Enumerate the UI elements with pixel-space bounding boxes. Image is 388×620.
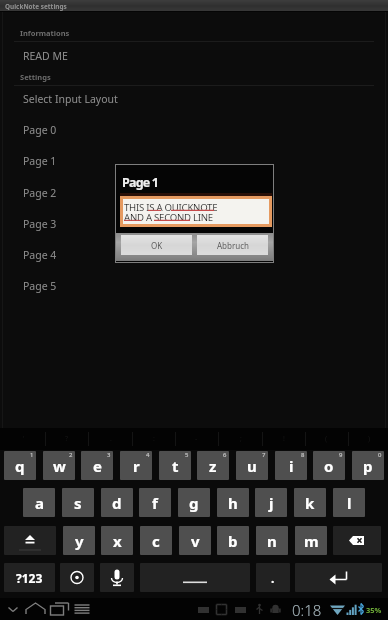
button[interactable]: Recent apps — [49, 598, 70, 620]
staticText: w — [53, 456, 66, 476]
staticText: Settings — [20, 72, 51, 82]
button[interactable]: v — [179, 526, 211, 555]
button[interactable]: r — [120, 451, 152, 480]
button[interactable]: Enter — [295, 563, 382, 592]
staticText: m — [304, 531, 319, 551]
button[interactable]: Voice input — [100, 563, 134, 592]
staticText: s — [74, 493, 82, 513]
button[interactable]: ?123 — [4, 563, 55, 592]
button[interactable]: Page 0 — [0, 122, 388, 153]
button[interactable]: Menu — [72, 598, 92, 620]
staticText: u — [247, 456, 257, 476]
button[interactable]: u — [236, 451, 268, 480]
button[interactable]: Page 5 — [0, 278, 388, 309]
button[interactable]: c — [140, 526, 172, 555]
staticText: p — [363, 456, 373, 476]
button[interactable]: Space — [140, 563, 250, 592]
button[interactable]: Backspace — [333, 526, 381, 555]
staticText: n — [267, 531, 277, 551]
button[interactable]: a — [23, 488, 55, 517]
button[interactable]: Shift — [4, 526, 56, 555]
staticText: Page 3 — [23, 217, 57, 231]
button[interactable]: Home — [24, 598, 47, 620]
staticText: QuickNote settings — [5, 2, 67, 11]
button[interactable]: n — [256, 526, 288, 555]
staticText: d — [112, 493, 122, 513]
staticText: 1 — [30, 451, 34, 459]
staticText: z — [209, 456, 217, 476]
button[interactable]: Page 2 — [0, 185, 388, 216]
button[interactable]: e — [81, 451, 113, 480]
staticText: 0:18 — [292, 600, 322, 620]
button[interactable]: z — [197, 451, 229, 480]
staticText: b — [228, 531, 238, 551]
staticText: x — [113, 531, 122, 551]
button[interactable]: Change language — [60, 563, 94, 592]
staticText: t — [172, 456, 179, 476]
staticText: j — [269, 493, 274, 513]
button[interactable]: Abbruch — [197, 235, 268, 255]
staticText: Abbruch — [217, 240, 249, 251]
staticText: OK — [151, 240, 163, 251]
staticText: 6 — [223, 451, 227, 459]
staticText: Page 4 — [23, 248, 57, 262]
button[interactable]: w — [43, 451, 75, 480]
button[interactable]: k — [294, 488, 326, 517]
staticText: 4 — [146, 451, 150, 459]
staticText: Informations — [20, 28, 70, 38]
button[interactable]: o — [313, 451, 345, 480]
button[interactable]: g — [178, 488, 210, 517]
button[interactable]: Page 4 — [0, 247, 388, 278]
staticText: Page 5 — [23, 279, 57, 293]
button[interactable]: t — [159, 451, 191, 480]
staticText: Page 0 — [23, 123, 57, 137]
button[interactable]: i — [275, 451, 307, 480]
staticText: 9 — [339, 451, 343, 459]
button[interactable]: y — [63, 526, 95, 555]
button[interactable]: . — [256, 563, 290, 592]
button[interactable]: p — [352, 451, 384, 480]
staticText: ?123 — [16, 570, 43, 586]
button[interactable]: d — [101, 488, 133, 517]
button[interactable]: Page 1 — [0, 153, 388, 184]
button[interactable]: OK — [121, 235, 192, 255]
button[interactable]: m — [295, 526, 327, 555]
staticText: 7 — [262, 451, 266, 459]
staticText: 35% — [366, 605, 382, 615]
button[interactable]: h — [217, 488, 249, 517]
staticText: READ ME — [23, 49, 68, 63]
button[interactable]: Select Input Layout — [0, 91, 388, 122]
button[interactable]: Back — [2, 598, 24, 620]
staticText: e — [93, 456, 102, 476]
button[interactable]: f — [139, 488, 171, 517]
staticText: Select Input Layout — [23, 92, 118, 106]
staticText: AND A SECOND LINE — [124, 211, 213, 221]
staticText: ? — [65, 434, 69, 444]
button[interactable]: x — [101, 526, 133, 555]
staticText: THIS IS A QUICKNOTE — [124, 201, 218, 211]
button[interactable]: l — [333, 488, 365, 517]
button[interactable]: READ ME — [0, 43, 388, 71]
staticText: Page 2 — [23, 186, 57, 200]
button[interactable]: q — [4, 451, 36, 480]
button[interactable]: j — [255, 488, 287, 517]
button[interactable]: b — [217, 526, 249, 555]
staticText: c — [152, 531, 160, 551]
staticText: k — [305, 493, 315, 513]
button[interactable]: Page 3 — [0, 216, 388, 247]
button[interactable]: s — [62, 488, 94, 517]
staticText: 3 — [107, 451, 111, 459]
